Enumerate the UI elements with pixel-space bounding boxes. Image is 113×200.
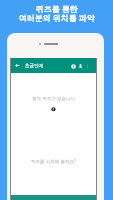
staticText: 퀴즈를 통한 여러분의 위치를 파악: [0, 3, 113, 24]
button[interactable]: More options: [82, 61, 92, 71]
staticText: 초급단계: [25, 63, 44, 69]
button[interactable]: Help: [68, 61, 78, 71]
staticText: 퀴즈를 시작해 볼까요?: [31, 158, 76, 164]
button[interactable]: Back: [13, 61, 22, 70]
staticText: 현재 퀴즈가 없습니다: [32, 95, 75, 101]
button[interactable]: Profile: [75, 61, 85, 71]
